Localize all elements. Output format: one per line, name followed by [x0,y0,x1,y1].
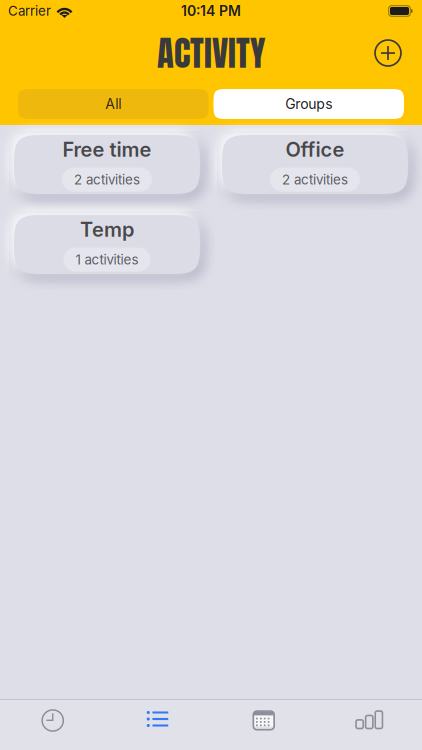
button[interactable]: Calendar [211,696,316,745]
button[interactable]: Groups [213,89,404,119]
button[interactable]: Temp [14,215,200,274]
button[interactable]: Statistics [316,696,422,745]
staticText: Groups [285,95,332,112]
staticText: 1 activities [75,251,138,268]
button[interactable]: All [18,89,208,119]
button[interactable]: Free time [14,135,200,194]
staticText: Office [285,137,344,161]
staticText: Carrier [8,3,51,19]
staticText: 2 activities [282,171,348,188]
staticText: Temp [80,217,134,241]
staticText: All [105,95,121,112]
button[interactable]: Office [222,135,408,194]
staticText: 2 activities [74,171,140,188]
staticText: Free time [62,137,151,161]
staticText: 10:14 PM [181,2,241,19]
button[interactable]: Activities [105,696,211,745]
staticText: ACTIVITY [157,27,265,79]
button[interactable]: Recents [0,696,105,745]
button[interactable]: Add activity [373,38,403,68]
